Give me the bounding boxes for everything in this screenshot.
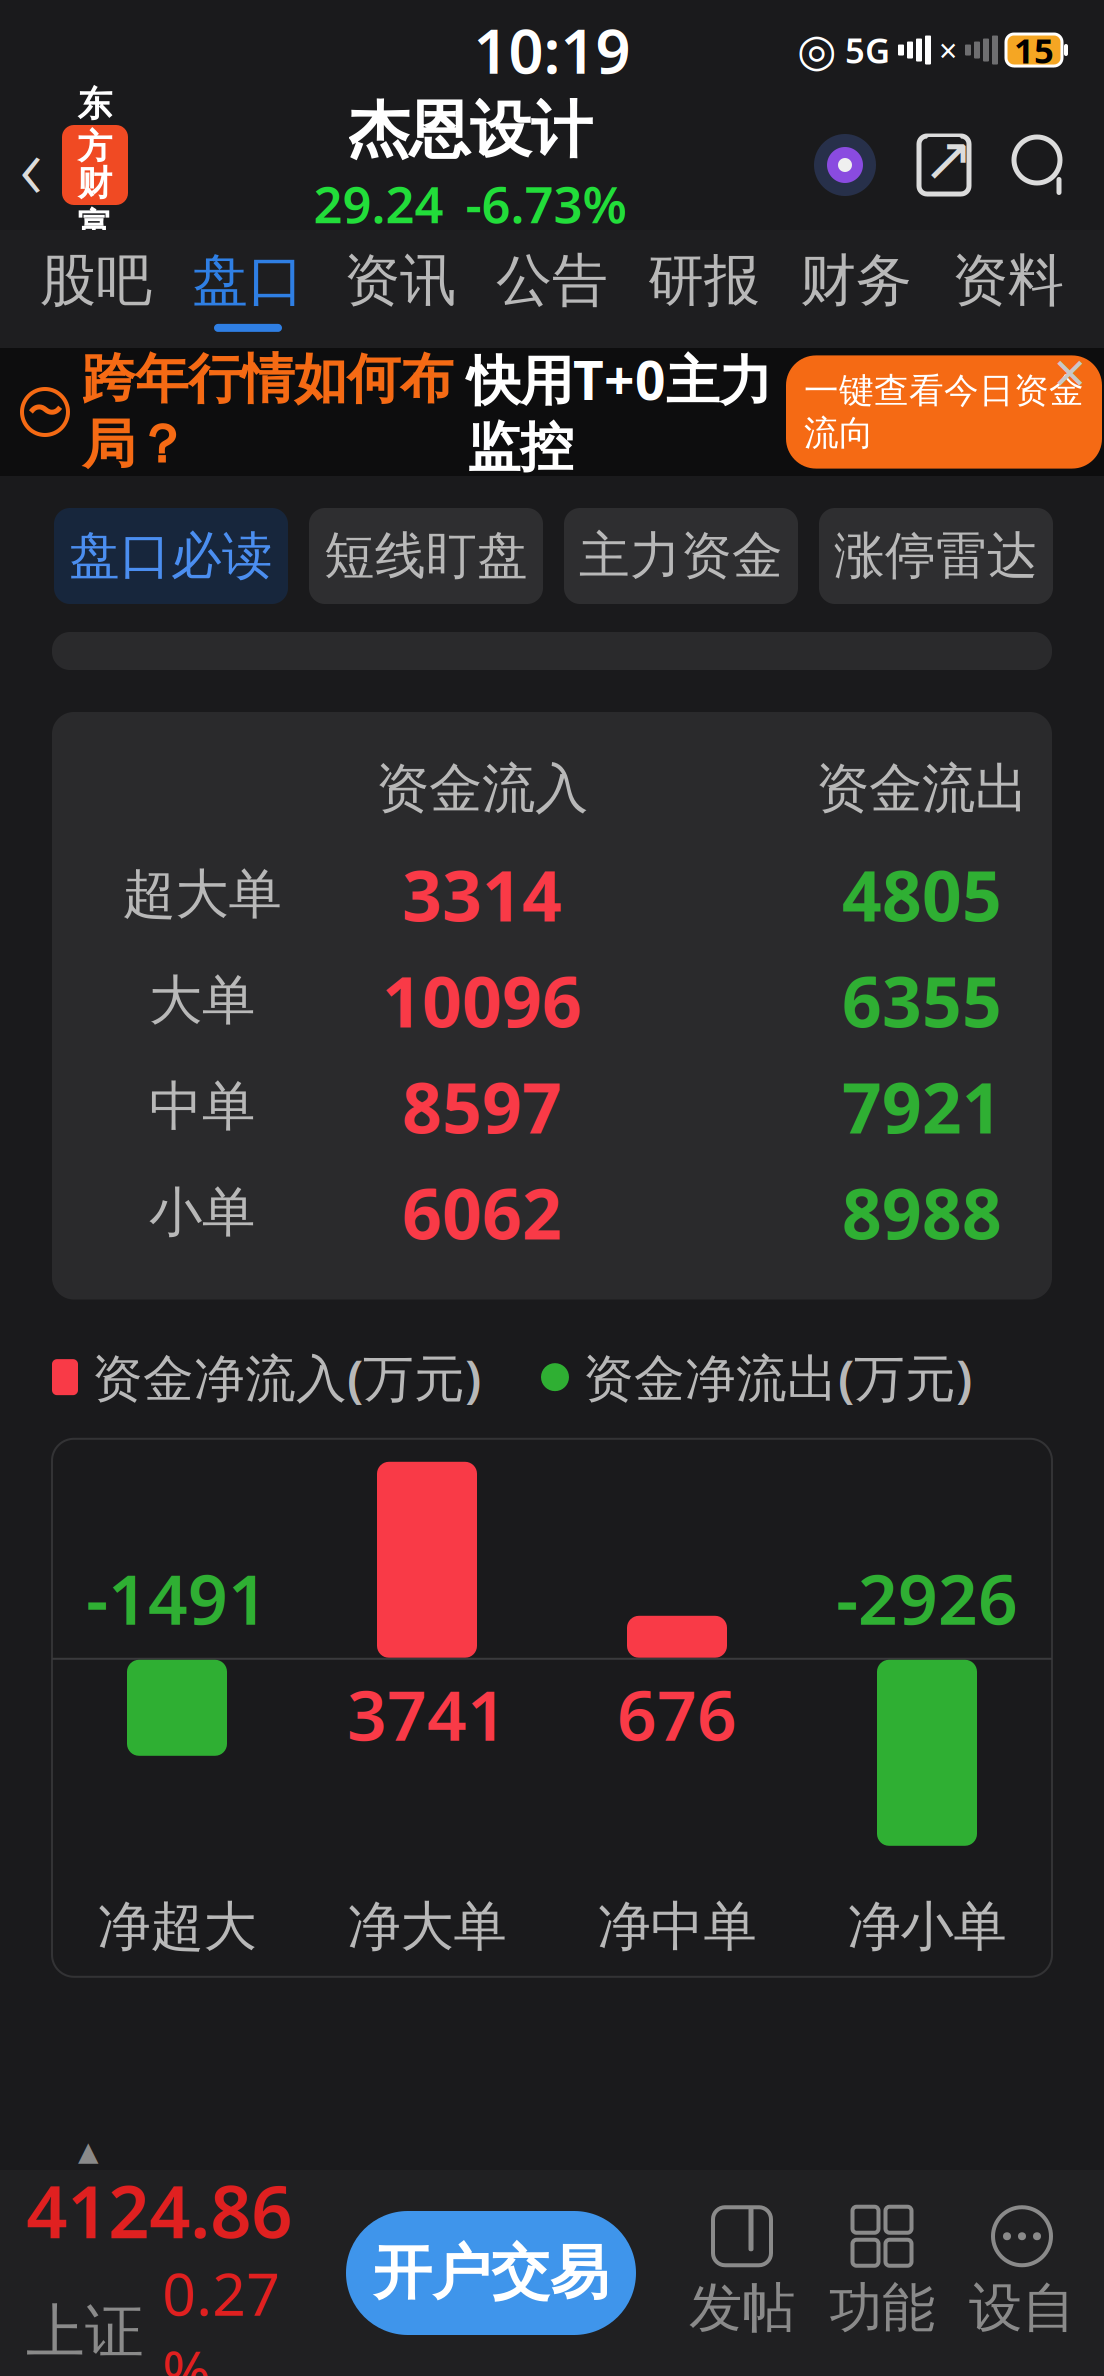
staticText: 主力资金 xyxy=(579,525,783,587)
staticText: 净大单 xyxy=(347,1894,506,1959)
staticText: 4124.86 xyxy=(26,2162,292,2258)
staticText: 财富 xyxy=(77,162,112,247)
staticText: 资金净流入(万元) xyxy=(92,1343,481,1411)
staticText: 杰恩设计 xyxy=(348,93,592,168)
button[interactable]: 公告 xyxy=(476,232,628,346)
staticText: ✕ xyxy=(1052,350,1088,398)
staticText: 小单 xyxy=(149,1180,255,1245)
staticText: 盘口必读 xyxy=(69,525,273,587)
button[interactable]: 功能 xyxy=(812,2205,952,2341)
staticText: 3741 xyxy=(347,1668,507,1760)
staticText: 功能 xyxy=(829,2275,935,2341)
staticText: 资金流出 xyxy=(816,756,1028,821)
staticText: ▲ xyxy=(78,2136,99,2166)
staticText: 一键查看今日资金流向 xyxy=(804,369,1084,455)
button[interactable]: 财务 xyxy=(780,232,932,346)
staticText: 5G xyxy=(845,27,890,73)
staticText: 财务 xyxy=(800,246,912,315)
staticText: 净中单 xyxy=(597,1894,756,1959)
staticText: 4805 xyxy=(842,848,1002,941)
button[interactable]: 盘口必读 xyxy=(54,508,288,604)
staticText: 大单 xyxy=(149,968,255,1033)
button[interactable]: 开户交易 xyxy=(346,2211,636,2335)
button[interactable]: 涨停雷达 xyxy=(819,508,1053,604)
button[interactable]: 搜索 xyxy=(1010,129,1074,201)
staticText: 10096 xyxy=(382,954,582,1047)
staticText: -6.73% xyxy=(465,170,626,237)
staticText: 676 xyxy=(617,1668,737,1760)
staticText: 7921 xyxy=(842,1060,1002,1153)
staticText: 资料 xyxy=(952,246,1064,315)
button[interactable]: 发帖 xyxy=(672,2205,812,2341)
staticText: 设自 xyxy=(969,2275,1075,2341)
staticText: 净小单 xyxy=(847,1894,1006,1959)
staticText: 涨停雷达 xyxy=(834,525,1038,587)
staticText: 发帖 xyxy=(689,2275,795,2341)
staticText: -1491 xyxy=(86,1552,268,1644)
button[interactable]: 助手 xyxy=(812,125,878,205)
button[interactable]: 短线盯盘 xyxy=(309,508,543,604)
button[interactable]: 研报 xyxy=(628,232,780,346)
button[interactable]: 上证指数 xyxy=(0,2136,326,2376)
staticText: 29.24 xyxy=(313,170,443,237)
staticText: 6355 xyxy=(842,954,1002,1047)
staticText: 资金净流出(万元) xyxy=(583,1343,972,1411)
staticText: 上证 xyxy=(26,2296,144,2368)
staticText: 快用T+0主力监控 xyxy=(467,344,772,480)
staticText: 短线盯盘 xyxy=(324,525,528,587)
button[interactable]: 东方财富 xyxy=(62,125,128,205)
staticText: -2926 xyxy=(836,1552,1018,1644)
button[interactable]: 分享 xyxy=(912,129,976,201)
staticText: 15 xyxy=(1014,27,1054,73)
staticText: 资金流入 xyxy=(376,756,588,821)
button[interactable]: 返回 xyxy=(0,117,62,213)
staticText: ‹ xyxy=(19,107,42,223)
staticText: 股吧 xyxy=(40,246,152,315)
staticText: 研报 xyxy=(648,246,760,315)
staticText: ↗ xyxy=(922,124,973,194)
staticText: 10:19 xyxy=(473,9,630,91)
staticText: 跨年行情如何布局？ xyxy=(82,346,453,477)
staticText: 开户交易 xyxy=(373,2237,609,2309)
staticText: 8597 xyxy=(402,1060,562,1153)
staticText: 0.27% xyxy=(162,2254,280,2376)
button[interactable]: 主力资金 xyxy=(564,508,798,604)
staticText: 〜 xyxy=(27,391,62,433)
staticText: × xyxy=(939,29,957,71)
button[interactable]: 资讯 xyxy=(324,232,476,346)
staticText: 盘口 xyxy=(192,246,304,315)
button[interactable]: 设自 xyxy=(952,2205,1092,2341)
button[interactable]: 资料 xyxy=(932,232,1084,346)
staticText: 公告 xyxy=(496,246,608,315)
staticText: 超大单 xyxy=(122,862,281,927)
staticText: 资讯 xyxy=(344,246,456,315)
staticText: 3314 xyxy=(402,848,562,941)
staticText: 东方 xyxy=(77,83,112,168)
button[interactable]: 股吧 xyxy=(20,232,172,346)
staticText: ◎ xyxy=(797,24,837,76)
button[interactable]: 关闭广告 xyxy=(1042,348,1098,400)
button[interactable]: 〜 xyxy=(0,344,1102,480)
button[interactable]: 盘口 xyxy=(172,232,324,346)
staticText: 6062 xyxy=(402,1166,562,1259)
staticText: 中单 xyxy=(149,1074,255,1139)
staticText: 净超大 xyxy=(97,1894,256,1959)
staticText: 8988 xyxy=(842,1166,1002,1259)
